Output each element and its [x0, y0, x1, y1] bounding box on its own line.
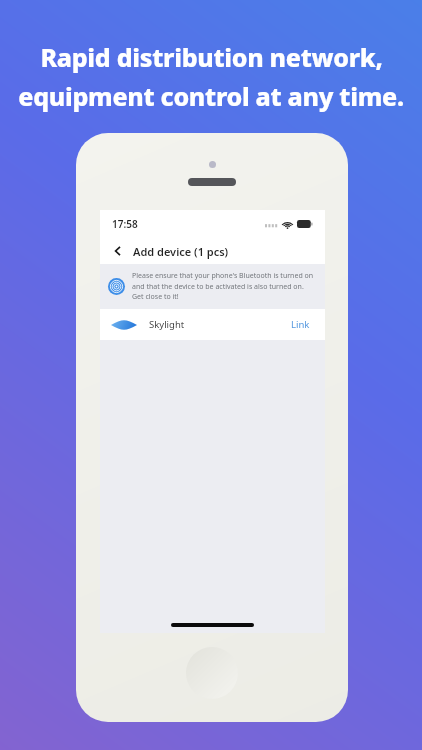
- staticText: Add device (1 pcs): [133, 244, 229, 259]
- staticText: 17:58: [112, 217, 138, 231]
- button[interactable]: Back: [109, 242, 127, 260]
- staticText: Rapid distribution network,: [40, 40, 383, 74]
- other: Home: [186, 647, 238, 699]
- button[interactable]: Skylight: [100, 309, 325, 340]
- staticText: Link: [291, 318, 310, 331]
- button[interactable]: Link: [287, 315, 314, 334]
- staticText: Skylight: [149, 318, 185, 331]
- staticText: Please ensure that your phone's Bluetoot…: [132, 271, 317, 301]
- staticText: equipment control at any time.: [18, 79, 404, 113]
